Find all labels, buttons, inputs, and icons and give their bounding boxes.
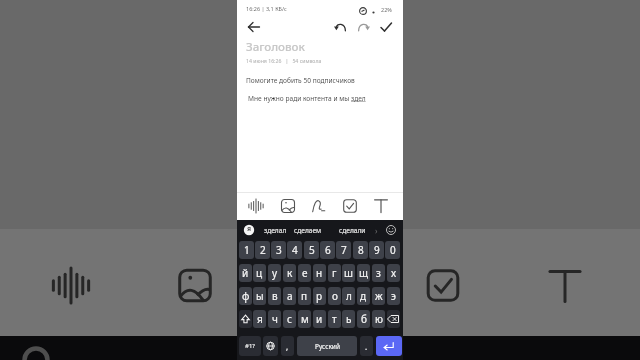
button[interactable]: а	[283, 287, 296, 305]
button[interactable]: .	[360, 336, 373, 356]
button[interactable]	[246, 196, 266, 216]
button[interactable]: о	[328, 287, 341, 305]
staticText: Заголовок	[246, 39, 305, 55]
button[interactable]	[309, 196, 329, 216]
staticText: ы	[256, 289, 264, 303]
button[interactable]	[340, 196, 360, 216]
staticText: ю	[375, 312, 383, 326]
staticText: 6	[325, 243, 331, 257]
staticText: 16:26 | 3,1 КБ/с	[246, 5, 287, 12]
button[interactable]: #1?	[239, 336, 261, 356]
button[interactable]	[263, 336, 278, 356]
button[interactable]	[383, 222, 399, 238]
staticText: #1?	[245, 342, 255, 350]
button[interactable]: з	[372, 264, 385, 282]
staticText: г	[332, 266, 337, 280]
button[interactable]: Русский	[297, 336, 357, 356]
button[interactable]: ч	[268, 310, 281, 328]
button[interactable]: ы	[253, 287, 266, 305]
button[interactable]: э	[387, 287, 400, 305]
staticText: щ	[359, 266, 368, 280]
staticText: 14 июня 16:26 | 54 символа	[246, 57, 322, 64]
staticText: э	[391, 289, 396, 303]
staticText: р	[316, 289, 323, 303]
staticText: ь	[346, 312, 352, 326]
staticText: Мне нужно ради контента и мы здел	[248, 94, 366, 103]
staticText: ч	[272, 312, 278, 326]
staticText: т	[332, 312, 337, 326]
button[interactable]: ш	[342, 264, 355, 282]
button[interactable]: е	[298, 264, 311, 282]
staticText: д	[360, 289, 367, 303]
staticText: у	[272, 266, 278, 280]
staticText: 0	[390, 243, 396, 257]
button[interactable]: ь	[342, 310, 355, 328]
button[interactable]: ,	[281, 336, 294, 356]
button[interactable]: и	[313, 310, 326, 328]
button[interactable]: п	[298, 287, 311, 305]
button[interactable]: л	[342, 287, 355, 305]
button[interactable]: х	[387, 264, 400, 282]
staticText: м	[301, 312, 309, 326]
button[interactable]: й	[239, 264, 252, 282]
staticText: х	[391, 266, 397, 280]
button[interactable]: с	[283, 310, 296, 328]
staticText: з	[376, 266, 381, 280]
button[interactable]: 8	[353, 241, 368, 259]
button[interactable]: р	[313, 287, 326, 305]
staticText: сделаем	[294, 226, 322, 235]
button[interactable]: к	[283, 264, 296, 282]
button[interactable]: 4	[287, 241, 302, 259]
button[interactable]	[333, 19, 349, 35]
staticText: ф	[242, 289, 250, 303]
button[interactable]: 6	[320, 241, 335, 259]
button[interactable]: н	[313, 264, 326, 282]
button[interactable]: т	[328, 310, 341, 328]
staticText: ц	[256, 266, 263, 280]
staticText: ш	[344, 266, 353, 280]
button[interactable]	[376, 336, 402, 356]
button[interactable]: 2	[255, 241, 270, 259]
button[interactable]: в	[268, 287, 281, 305]
button[interactable]	[371, 196, 391, 216]
button[interactable]: 0	[385, 241, 400, 259]
button[interactable]	[239, 310, 252, 328]
button[interactable]: я	[253, 310, 266, 328]
button[interactable]: щ	[357, 264, 370, 282]
button[interactable]: м	[298, 310, 311, 328]
button[interactable]: 7	[336, 241, 351, 259]
staticText: 2	[260, 243, 266, 257]
staticText: 22%	[381, 6, 392, 13]
button[interactable]: 9	[369, 241, 384, 259]
staticText: и	[316, 312, 323, 326]
staticText: о	[332, 289, 338, 303]
button[interactable]: сделали	[336, 220, 368, 240]
button[interactable]	[278, 196, 298, 216]
button[interactable]: 1	[239, 241, 254, 259]
button[interactable]: д	[357, 287, 370, 305]
button[interactable]	[246, 19, 262, 35]
button[interactable]: ж	[372, 287, 385, 305]
button[interactable]: у	[268, 264, 281, 282]
staticText: й	[242, 266, 249, 280]
button[interactable]	[378, 19, 394, 35]
button[interactable]: ф	[239, 287, 252, 305]
button[interactable]	[355, 19, 371, 35]
button[interactable]: ц	[253, 264, 266, 282]
button[interactable]: б	[357, 310, 370, 328]
button[interactable]: зделал	[261, 220, 289, 240]
button[interactable]: 3	[271, 241, 286, 259]
staticText: зделал	[264, 226, 287, 235]
staticText: 4	[292, 243, 298, 257]
button[interactable]: 5	[304, 241, 319, 259]
button[interactable]: ю	[372, 310, 385, 328]
button[interactable]	[387, 310, 400, 328]
staticText: п	[301, 289, 308, 303]
staticText: с	[287, 312, 292, 326]
staticText: Я	[247, 225, 252, 233]
button[interactable]: сделаем	[292, 220, 324, 240]
staticText: 9	[374, 243, 380, 257]
staticText: 7	[341, 243, 347, 257]
staticText: б	[361, 312, 367, 326]
button[interactable]: г	[328, 264, 341, 282]
